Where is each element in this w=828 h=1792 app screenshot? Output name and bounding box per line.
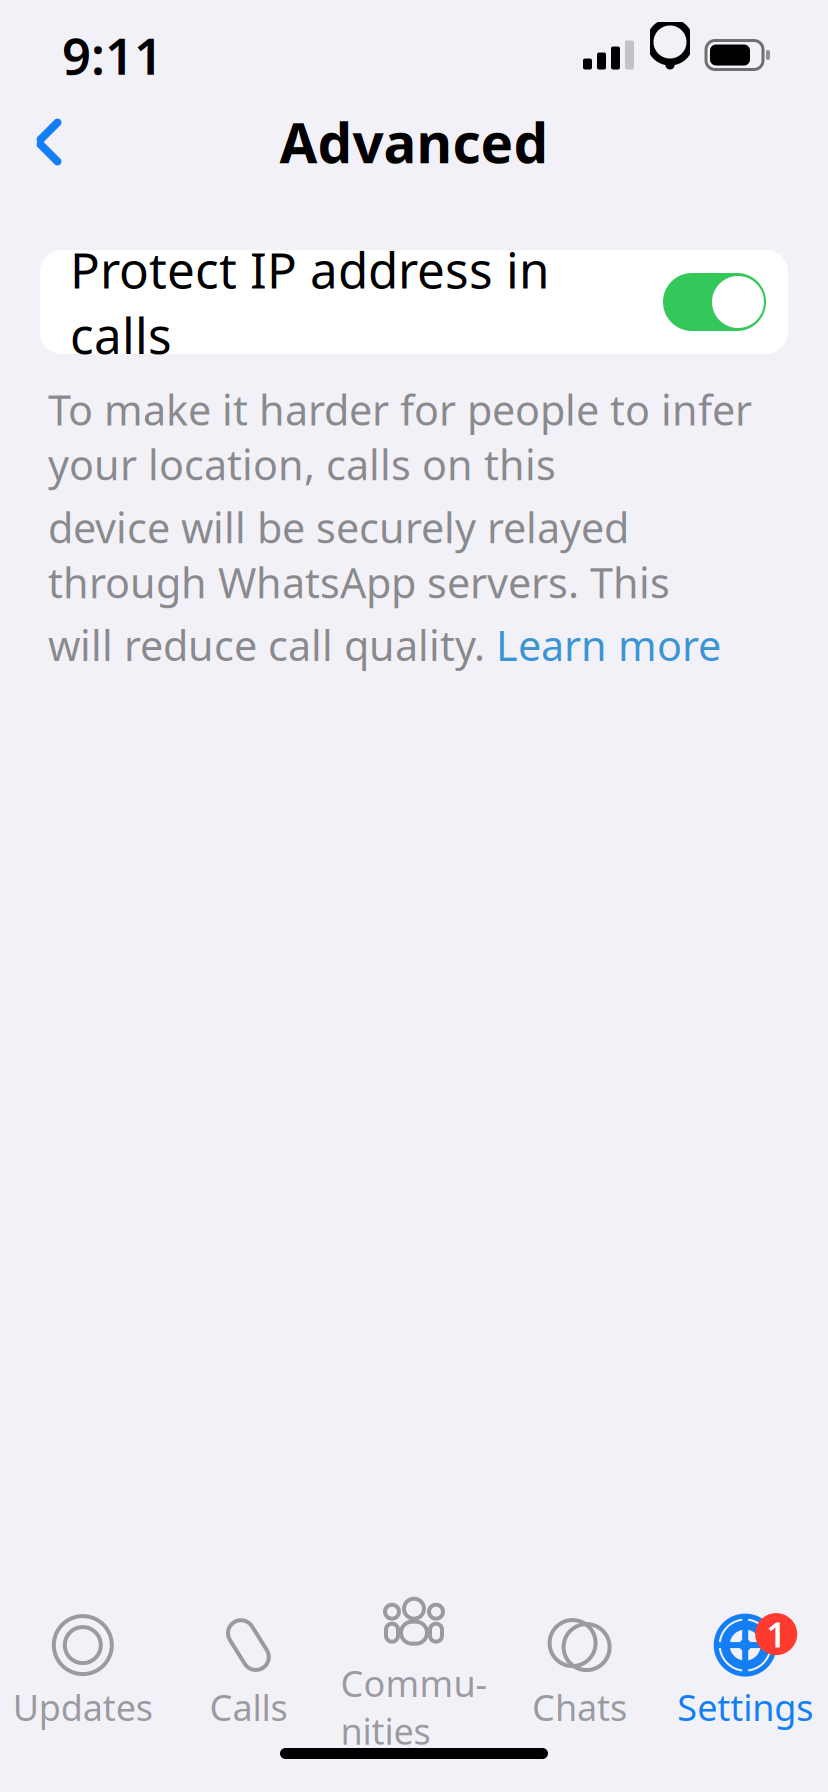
button[interactable]: Calls [166, 1612, 331, 1732]
staticText: To make it harder for people to infer yo… [48, 382, 752, 492]
button[interactable]: Back [10, 103, 88, 181]
staticText: Calls [209, 1683, 287, 1731]
button[interactable]: Updates [0, 1612, 166, 1732]
button[interactable]: Communities [331, 1612, 497, 1732]
staticText: Communities [340, 1659, 487, 1755]
staticText: Advanced [279, 106, 548, 178]
staticText: Chats [532, 1683, 627, 1731]
button[interactable]: Learn more [496, 618, 721, 672]
staticText: Protect IP address in calls [70, 236, 549, 367]
staticText: device will be securely relayed through … [48, 500, 670, 610]
staticText: Settings [677, 1683, 813, 1731]
staticText: Learn more [496, 618, 721, 672]
button[interactable]: Chats [497, 1612, 662, 1732]
staticText: will reduce call quality. [48, 618, 496, 672]
staticText: Updates [13, 1683, 153, 1731]
button[interactable]: Protect IP address in calls [40, 250, 788, 354]
staticText: 1 [766, 1611, 786, 1657]
button[interactable]: 1 [662, 1612, 828, 1732]
staticText: 9:11 [62, 21, 163, 89]
